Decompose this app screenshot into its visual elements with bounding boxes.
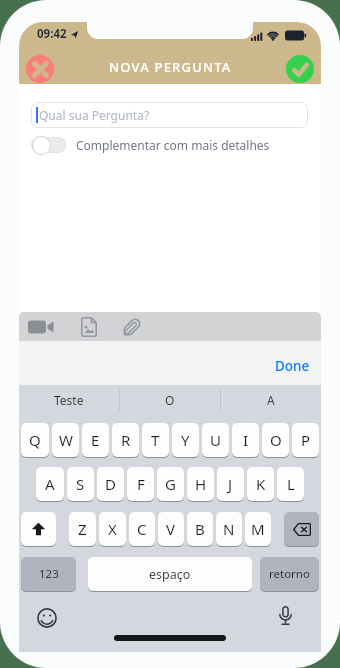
button[interactable]: A xyxy=(221,385,321,415)
button[interactable]: I xyxy=(232,423,259,457)
staticText: J xyxy=(228,474,233,494)
staticText: H xyxy=(195,474,207,494)
staticText: retorno xyxy=(269,566,310,582)
button[interactable] xyxy=(26,55,54,83)
button[interactable] xyxy=(284,512,319,546)
staticText: L xyxy=(287,474,295,494)
staticText: R xyxy=(121,430,131,450)
staticText: U xyxy=(210,430,221,450)
staticText: Done xyxy=(275,357,310,375)
staticText: A xyxy=(45,474,55,494)
button[interactable]: J xyxy=(217,467,244,501)
button[interactable]: Z xyxy=(69,512,96,546)
staticText: Qual sua Pergunta? xyxy=(39,107,150,123)
button[interactable]: C xyxy=(129,512,155,546)
button[interactable]: retorno xyxy=(260,557,319,591)
staticText: Q xyxy=(29,430,41,450)
button[interactable] xyxy=(74,314,104,339)
button[interactable]: X xyxy=(99,512,126,546)
staticText: K xyxy=(256,474,266,494)
button[interactable]: O xyxy=(120,385,220,415)
staticText: O xyxy=(165,392,175,408)
button[interactable]: S xyxy=(67,467,94,501)
button[interactable]: V xyxy=(158,512,184,546)
button[interactable] xyxy=(25,314,57,339)
staticText: Teste xyxy=(54,392,84,408)
staticText: T xyxy=(151,430,160,450)
staticText: A xyxy=(267,392,275,408)
staticText: W xyxy=(59,430,73,450)
staticText: M xyxy=(251,519,265,539)
button[interactable]: N xyxy=(216,512,242,546)
button[interactable]: Teste xyxy=(19,385,119,415)
button[interactable]: Q xyxy=(21,423,49,457)
button[interactable] xyxy=(21,512,56,546)
staticText: O xyxy=(270,430,282,450)
staticText: V xyxy=(166,519,176,539)
staticText: B xyxy=(195,519,205,539)
staticText: D xyxy=(105,474,116,494)
button[interactable]: F xyxy=(127,467,154,501)
staticText: G xyxy=(165,474,176,494)
button[interactable]: K xyxy=(247,467,274,501)
button[interactable]: Done xyxy=(275,357,310,375)
staticText: S xyxy=(76,474,85,494)
staticText: Complementar com mais detalhes xyxy=(76,137,270,153)
button[interactable]: B xyxy=(187,512,213,546)
staticText: Z xyxy=(78,519,87,539)
button[interactable]: E xyxy=(82,423,109,457)
staticText: 123 xyxy=(39,566,59,582)
staticText: N xyxy=(223,519,235,539)
staticText: F xyxy=(137,474,145,494)
button[interactable]: 123 xyxy=(21,557,76,591)
button[interactable] xyxy=(271,602,299,630)
button[interactable]: M xyxy=(245,512,271,546)
button[interactable]: Y xyxy=(172,423,199,457)
button[interactable]: G xyxy=(157,467,184,501)
button[interactable]: H xyxy=(187,467,214,501)
button[interactable] xyxy=(117,314,147,339)
button[interactable]: D xyxy=(97,467,124,501)
staticText: NOVA PERGUNTA xyxy=(109,58,232,76)
button[interactable]: P xyxy=(292,423,319,457)
staticText: E xyxy=(91,430,100,450)
button[interactable]: L xyxy=(277,467,304,501)
staticText: 09:42 xyxy=(37,26,67,42)
button[interactable]: U xyxy=(202,423,229,457)
button[interactable] xyxy=(31,135,69,155)
staticText: Y xyxy=(181,430,190,450)
button[interactable] xyxy=(286,55,314,83)
button[interactable]: espaço xyxy=(88,557,252,591)
staticText: C xyxy=(137,519,147,539)
button[interactable]: A xyxy=(36,467,64,501)
button[interactable]: Qual sua Pergunta? xyxy=(31,102,308,128)
staticText: espaço xyxy=(149,566,191,583)
staticText: I xyxy=(243,430,249,450)
button[interactable]: O xyxy=(262,423,289,457)
staticText: X xyxy=(108,519,117,539)
staticText: P xyxy=(301,430,311,450)
button[interactable]: T xyxy=(142,423,169,457)
button[interactable]: W xyxy=(52,423,79,457)
button[interactable]: R xyxy=(112,423,139,457)
button[interactable] xyxy=(33,604,61,632)
